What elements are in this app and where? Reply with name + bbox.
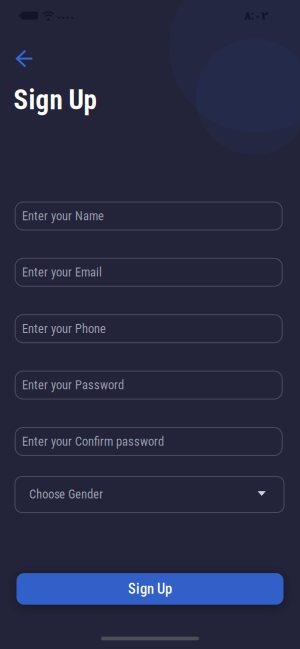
secureTextField[interactable]: Enter your Password xyxy=(15,371,283,400)
staticText: Sign Up xyxy=(128,580,172,597)
textField[interactable]: Enter your Name xyxy=(15,201,283,230)
staticText: ٨:٠٢ xyxy=(244,7,268,23)
textField[interactable]: Enter your Email xyxy=(15,258,283,287)
staticText: Sign Up xyxy=(13,84,96,116)
staticText: Choose Gender xyxy=(29,487,103,502)
staticText: Enter your Confirm password xyxy=(22,434,164,449)
staticText: Enter your Name xyxy=(22,209,104,223)
staticText: Enter your Password xyxy=(22,378,124,392)
button[interactable]: Choose Gender xyxy=(14,476,284,513)
textField[interactable]: Enter your Phone xyxy=(15,314,283,343)
button[interactable]: Back xyxy=(11,45,39,73)
button[interactable]: Sign Up xyxy=(16,573,283,605)
staticText: Enter your Email xyxy=(22,265,102,279)
staticText: Enter your Phone xyxy=(22,321,106,336)
secureTextField[interactable]: Enter your Confirm password xyxy=(15,427,283,456)
